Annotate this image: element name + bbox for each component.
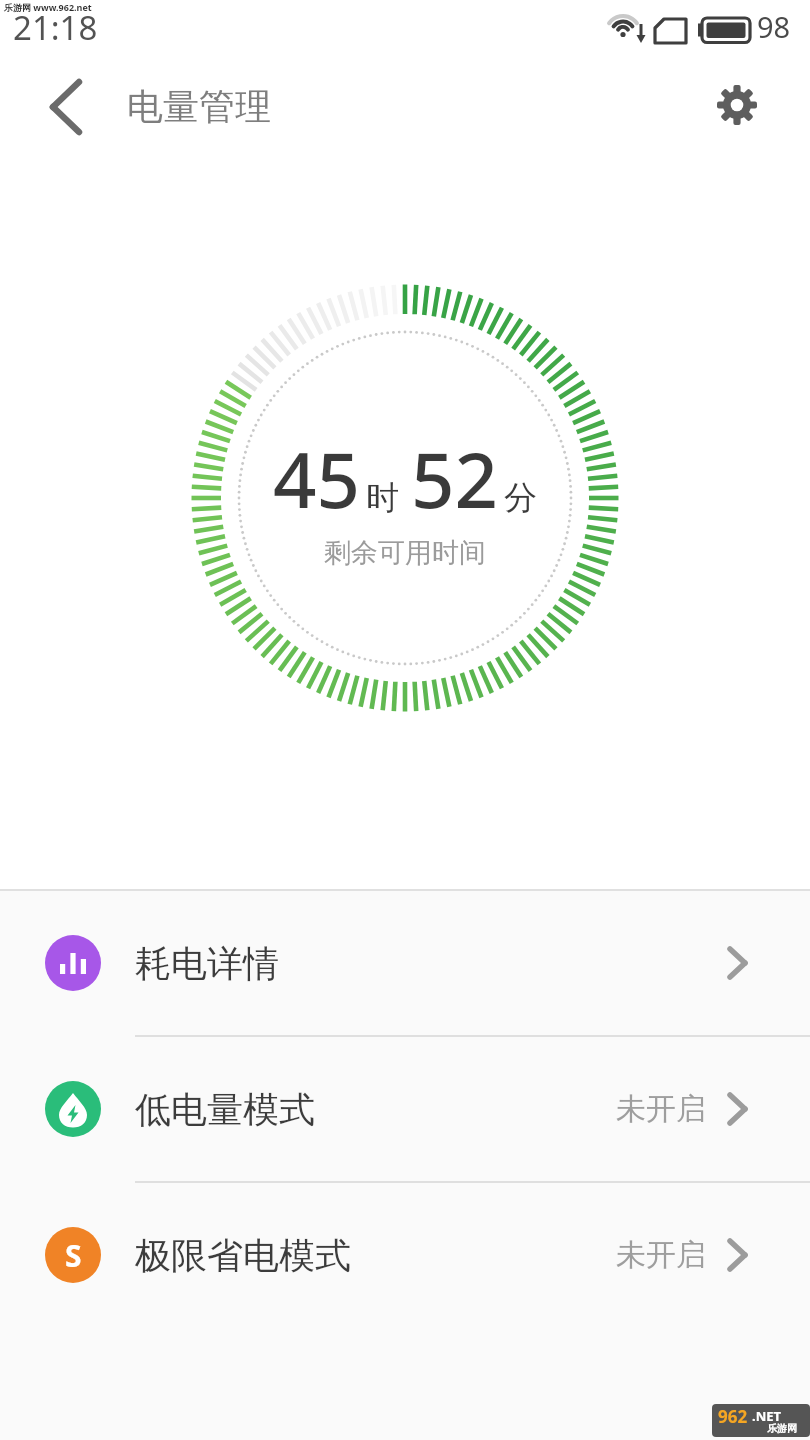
staticText: 时: [366, 477, 399, 519]
staticText: .NET: [752, 1407, 782, 1425]
button[interactable]: 低电量模式: [0, 1037, 810, 1181]
staticText: 乐游网: [767, 1422, 797, 1435]
staticText: 962: [718, 1405, 748, 1428]
staticText: 98: [757, 7, 791, 46]
staticText: 电量管理: [127, 84, 271, 129]
staticText: 剩余可用时间: [324, 536, 486, 570]
button[interactable]: 耗电详情: [0, 891, 810, 1035]
button[interactable]: [705, 75, 771, 139]
staticText: 极限省电模式: [135, 1233, 351, 1278]
staticText: 耗电详情: [135, 941, 279, 986]
staticText: 未开启: [616, 1090, 706, 1128]
staticText: S: [65, 1235, 82, 1276]
button[interactable]: S: [0, 1183, 810, 1327]
staticText: 21:18: [13, 5, 98, 50]
staticText: 分: [504, 477, 537, 519]
staticText: 乐游网 www.962.net: [4, 1, 92, 13]
staticText: 未开启: [616, 1236, 706, 1274]
staticText: 低电量模式: [135, 1087, 315, 1132]
button[interactable]: [36, 75, 96, 139]
staticText: 52: [411, 427, 498, 531]
staticText: 45: [273, 427, 360, 531]
